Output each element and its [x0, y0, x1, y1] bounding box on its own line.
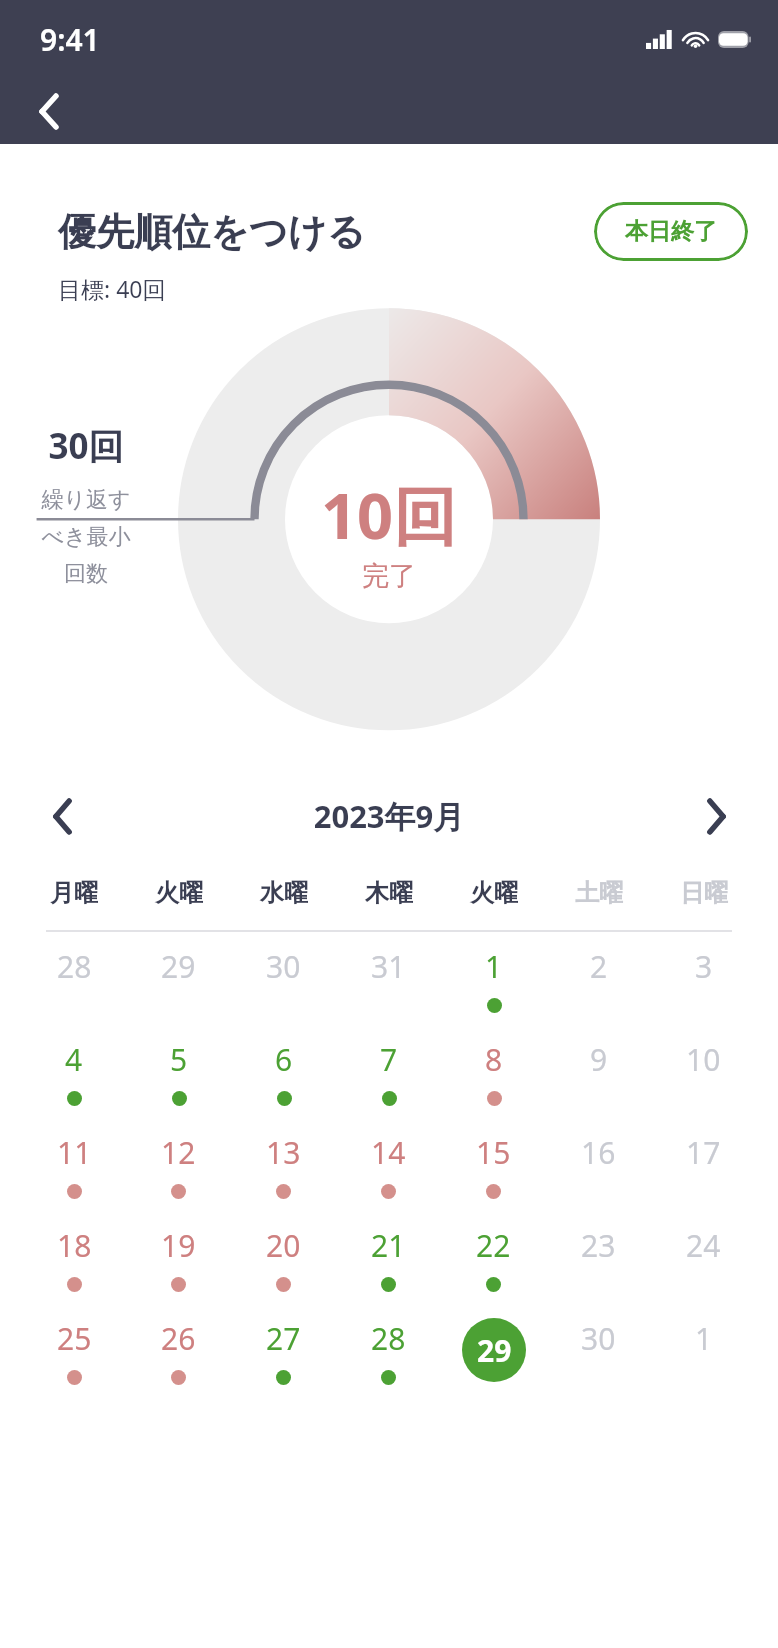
button[interactable]: 19	[126, 1211, 231, 1304]
button[interactable]: 29	[441, 1304, 546, 1397]
staticText: 15	[476, 1132, 511, 1173]
staticText: 28	[57, 946, 92, 987]
staticText: 23	[581, 1225, 616, 1266]
staticText: 1	[695, 1318, 713, 1359]
staticText: 完了	[362, 559, 416, 593]
button[interactable]: 14	[336, 1118, 441, 1211]
button[interactable]: 1	[651, 1304, 756, 1397]
staticText: べき最小	[32, 523, 140, 551]
button[interactable]: 21	[336, 1211, 441, 1304]
button[interactable]: 25	[22, 1304, 126, 1397]
button[interactable]: 13	[231, 1118, 336, 1211]
staticText: 30	[266, 946, 301, 987]
button[interactable]: Previous month	[22, 776, 102, 856]
staticText: 30回	[32, 422, 140, 470]
staticText: 12	[161, 1132, 196, 1173]
staticText: 13	[266, 1132, 301, 1173]
staticText: 22	[476, 1225, 511, 1266]
staticText: 18	[57, 1225, 92, 1266]
button[interactable]: 24	[651, 1211, 756, 1304]
button[interactable]: 16	[546, 1118, 651, 1211]
button[interactable]: 27	[231, 1304, 336, 1397]
staticText: 6	[275, 1039, 293, 1080]
staticText: 19	[161, 1225, 196, 1266]
button[interactable]: 15	[441, 1118, 546, 1211]
button[interactable]: 4	[22, 1025, 126, 1118]
staticText: 繰り返す	[32, 486, 140, 514]
staticText: 2023年9月	[102, 795, 676, 837]
staticText: 20	[266, 1225, 301, 1266]
button[interactable]: 30	[546, 1304, 651, 1397]
staticText: 9	[590, 1039, 608, 1080]
button[interactable]: 26	[126, 1304, 231, 1397]
staticText: 1	[485, 946, 503, 987]
button[interactable]: 9	[546, 1025, 651, 1118]
staticText: 回数	[32, 560, 140, 588]
button[interactable]: 17	[651, 1118, 756, 1211]
staticText: 火曜	[470, 878, 518, 908]
staticText: 14	[371, 1132, 406, 1173]
staticText: 24	[686, 1225, 721, 1266]
staticText: 4	[65, 1039, 83, 1080]
staticText: 26	[161, 1318, 196, 1359]
staticText: 16	[581, 1132, 616, 1173]
button[interactable]: 28	[336, 1304, 441, 1397]
button[interactable]: 28	[22, 932, 126, 1025]
staticText: 土曜	[575, 878, 623, 908]
staticText: 9:41	[40, 19, 100, 60]
button[interactable]: 30	[231, 932, 336, 1025]
button[interactable]: 11	[22, 1118, 126, 1211]
staticText: 28	[371, 1318, 406, 1359]
button[interactable]: 2	[546, 932, 651, 1025]
button[interactable]: 5	[126, 1025, 231, 1118]
button[interactable]: 22	[441, 1211, 546, 1304]
button[interactable]: 1	[441, 932, 546, 1025]
staticText: 5	[170, 1039, 188, 1080]
staticText: 目標: 40回	[58, 273, 166, 304]
staticText: 29	[161, 946, 196, 987]
button[interactable]: Back	[20, 82, 78, 140]
staticText: 水曜	[260, 878, 308, 908]
staticText: 10回	[321, 472, 457, 558]
button[interactable]: 6	[231, 1025, 336, 1118]
button[interactable]: 20	[231, 1211, 336, 1304]
staticText: 25	[57, 1318, 92, 1359]
staticText: 3	[695, 946, 713, 987]
staticText: 日曜	[680, 878, 728, 908]
staticText: 木曜	[365, 878, 413, 908]
button[interactable]: 31	[336, 932, 441, 1025]
staticText: 本日終了	[625, 217, 717, 246]
button[interactable]: 23	[546, 1211, 651, 1304]
staticText: 31	[371, 946, 406, 987]
button[interactable]: 本日終了	[594, 202, 748, 261]
staticText: 優先順位をつける	[58, 208, 594, 256]
staticText: 17	[686, 1132, 721, 1173]
staticText: 10	[686, 1039, 721, 1080]
staticText: 月曜	[50, 878, 98, 908]
button[interactable]: 3	[651, 932, 756, 1025]
button[interactable]: 12	[126, 1118, 231, 1211]
button[interactable]: 29	[126, 932, 231, 1025]
button[interactable]: Next month	[676, 776, 756, 856]
button[interactable]: 18	[22, 1211, 126, 1304]
button[interactable]: 7	[336, 1025, 441, 1118]
button[interactable]: 10	[651, 1025, 756, 1118]
staticText: 21	[371, 1225, 406, 1266]
staticText: 火曜	[155, 878, 203, 908]
button[interactable]: 8	[441, 1025, 546, 1118]
staticText: 2	[590, 946, 608, 987]
staticText: 11	[57, 1132, 92, 1173]
staticText: 29	[477, 1330, 512, 1371]
staticText: 30	[581, 1318, 616, 1359]
staticText: 27	[266, 1318, 301, 1359]
staticText: 8	[485, 1039, 503, 1080]
staticText: 7	[380, 1039, 398, 1080]
